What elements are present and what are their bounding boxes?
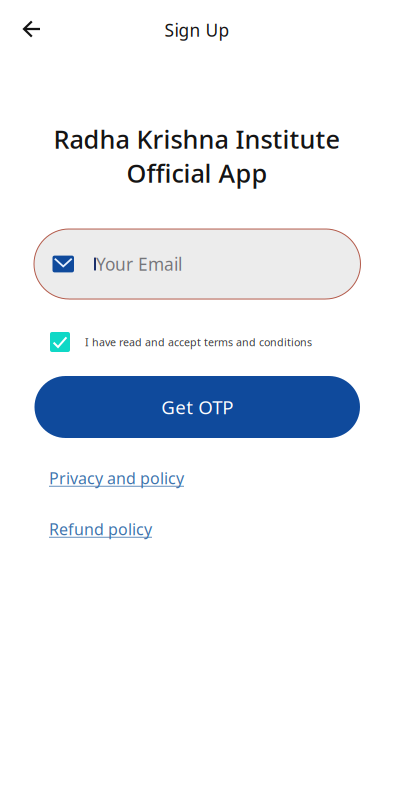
staticText: Privacy and policy <box>49 467 184 489</box>
button[interactable]: Get OTP <box>0 376 394 438</box>
button[interactable]: Refund policy <box>0 518 394 540</box>
staticText: Sign Up <box>164 18 229 41</box>
staticText: Radha Krishna Institute <box>53 122 340 156</box>
staticText: Official App <box>126 156 267 190</box>
button[interactable]: I have read and accept terms and conditi… <box>0 332 394 352</box>
staticText: Refund policy <box>49 518 152 540</box>
staticText: Get OTP <box>161 395 233 419</box>
staticText: I have read and accept terms and conditi… <box>85 335 312 349</box>
button[interactable]: Back <box>10 3 54 51</box>
staticText: Your Email <box>96 252 182 275</box>
button[interactable]: Privacy and policy <box>0 467 394 489</box>
